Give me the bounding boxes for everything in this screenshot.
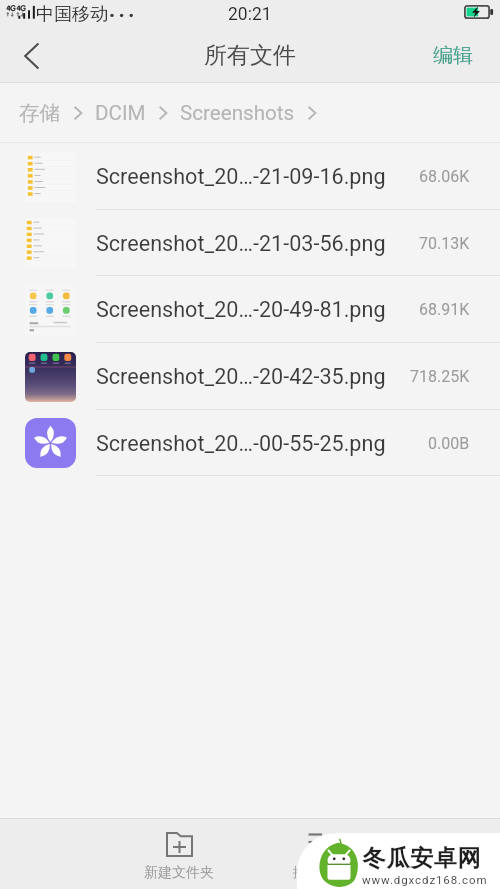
button[interactable]: Screenshots: [180, 101, 295, 125]
button[interactable]: 新建文件夹: [108, 832, 250, 889]
staticText: 排序方式: [293, 864, 349, 882]
staticText: 68.06K: [419, 167, 470, 186]
button[interactable]: Screenshot_20…-21-03-56.png: [0, 210, 500, 276]
staticText: Screenshot_20…-21-03-56.png: [96, 231, 386, 256]
staticText: Screenshot_20…-20-49-81.png: [96, 297, 386, 322]
staticText: Screenshot_20…-20-42-35.png: [96, 364, 386, 389]
staticText: 编辑: [433, 43, 473, 68]
button[interactable]: 排序方式: [250, 832, 392, 889]
button[interactable]: 存储: [19, 100, 61, 126]
button[interactable]: 编辑: [407, 28, 500, 83]
staticText: 70.13K: [419, 234, 470, 253]
staticText: www.dgxcdz168.com: [362, 873, 488, 886]
staticText: 中国移动: [36, 3, 108, 26]
staticText: Screenshot_20…-00-55-25.png: [96, 431, 386, 456]
button[interactable]: Screenshot_20…-20-49-81.png: [0, 276, 500, 343]
staticText: 20:21: [228, 4, 272, 25]
staticText: 冬瓜安卓网: [362, 844, 481, 873]
staticText: Screenshot_20…-21-09-16.png: [96, 164, 386, 189]
staticText: 新建文件夹: [144, 864, 214, 882]
button[interactable]: Screenshot_20…-21-09-16.png: [0, 143, 500, 210]
button[interactable]: Back: [0, 28, 64, 83]
staticText: 718.25K: [410, 367, 470, 386]
staticText: 0.00B: [428, 434, 470, 453]
button[interactable]: DCIM: [95, 101, 146, 125]
button[interactable]: Screenshot_20…-00-55-25.png: [0, 410, 500, 476]
button[interactable]: Screenshot_20…-20-42-35.png: [0, 343, 500, 410]
staticText: 68.91K: [419, 300, 470, 319]
staticText: 所有文件: [204, 41, 296, 70]
